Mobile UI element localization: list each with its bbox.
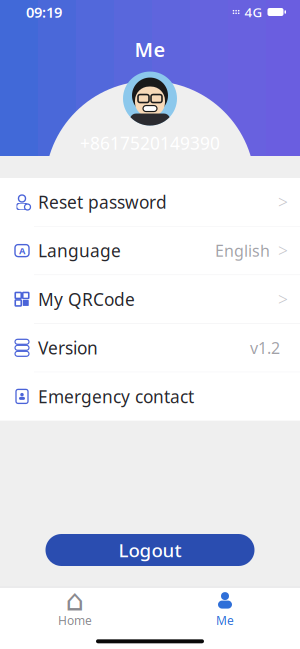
staticText: English bbox=[215, 240, 270, 261]
staticText: Home bbox=[58, 612, 92, 628]
staticText: > bbox=[278, 239, 288, 262]
button[interactable]: Version bbox=[0, 324, 300, 372]
button[interactable]: Logout bbox=[45, 534, 254, 566]
staticText: 4G bbox=[244, 3, 262, 21]
staticText: Reset password bbox=[38, 190, 167, 213]
staticText: Me bbox=[216, 612, 234, 628]
staticText: Me bbox=[134, 36, 165, 63]
button[interactable]: A bbox=[0, 227, 300, 275]
staticText: My QRCode bbox=[38, 288, 135, 311]
staticText: v1.2 bbox=[250, 337, 280, 358]
button[interactable]: Emergency contact bbox=[0, 372, 300, 420]
staticText: A bbox=[19, 244, 25, 257]
staticText: Version bbox=[38, 336, 98, 359]
button[interactable]: Reset password bbox=[0, 178, 300, 226]
staticText: Emergency contact bbox=[38, 385, 194, 408]
staticText: > bbox=[278, 190, 288, 213]
staticText: 09:19 bbox=[26, 2, 62, 22]
button[interactable]: ⌂ bbox=[0, 587, 150, 631]
button[interactable]: Me bbox=[150, 587, 300, 631]
staticText: Logout bbox=[118, 538, 181, 562]
staticText: +8617520149390 bbox=[80, 132, 220, 155]
staticText: > bbox=[278, 288, 288, 311]
staticText: ⌂ bbox=[65, 584, 84, 617]
staticText: Language bbox=[38, 239, 121, 262]
button[interactable]: My QRCode bbox=[0, 275, 300, 323]
